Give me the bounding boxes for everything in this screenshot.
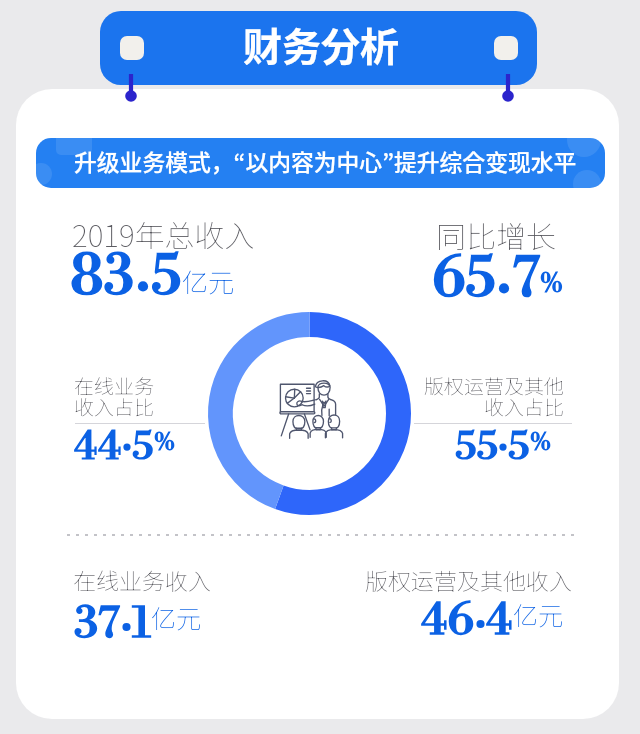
staticText: 亿元 [513, 596, 564, 632]
staticText: 同比增长 [436, 213, 556, 256]
staticText: 版权运营及其他 [414, 371, 564, 400]
staticText: 55 [455, 423, 498, 472]
staticText: % [530, 429, 551, 458]
staticText: 升级业务模式，“以内容为中心”提升综合变现水平 [74, 145, 577, 178]
staticText: 46 [421, 593, 474, 648]
staticText: 1 [132, 596, 151, 651]
staticText: 5 [151, 243, 182, 312]
staticText: 65 [432, 245, 496, 314]
staticText: 5 [132, 423, 154, 472]
staticText: % [540, 269, 563, 300]
staticText: 2019年总收入 [72, 212, 255, 255]
staticText: % [154, 429, 175, 458]
staticText: 在线业务收入 [73, 563, 211, 596]
staticText: 收入占比 [74, 392, 206, 421]
staticText: 7 [512, 245, 540, 314]
button[interactable]: 升级业务模式，“以内容为中心”提升综合变现水平 [36, 138, 605, 188]
staticText: 在线业务 [74, 371, 206, 400]
staticText: 亿元 [182, 262, 235, 300]
staticText: 44 [74, 423, 122, 472]
staticText: 收入占比 [414, 392, 564, 421]
staticText: 财务分析 [243, 16, 400, 72]
staticText: 版权运营及其他收入 [365, 563, 572, 596]
staticText: 37 [74, 596, 120, 651]
staticText: 4 [486, 593, 513, 648]
staticText: 5 [508, 423, 530, 472]
button[interactable]: 财务分析 [100, 11, 537, 85]
staticText: 亿元 [151, 599, 202, 635]
staticText: 83 [70, 243, 135, 312]
